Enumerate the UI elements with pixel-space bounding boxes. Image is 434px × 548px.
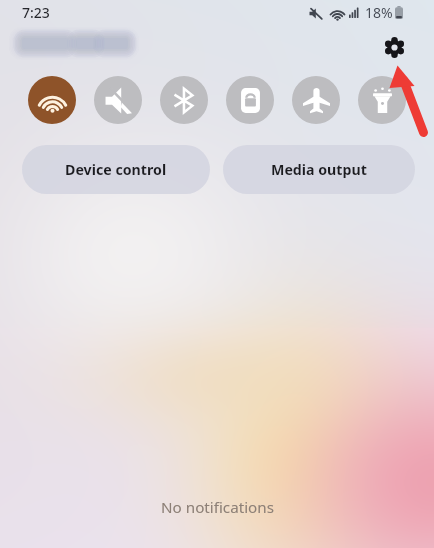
staticText: Device control (65, 160, 167, 179)
staticText: 7:23 (22, 3, 50, 22)
button[interactable]: Settings (378, 31, 410, 63)
button[interactable]: Bluetooth (160, 76, 208, 124)
button[interactable]: Sound off (94, 76, 142, 124)
staticText: 18% (365, 3, 393, 22)
button[interactable]: Device control (22, 145, 210, 194)
button[interactable]: Flashlight (358, 76, 406, 124)
button[interactable]: Media output (223, 145, 415, 194)
button[interactable]: Airplane mode (292, 76, 340, 124)
staticText: No notifications (161, 497, 274, 518)
staticText: Media output (271, 160, 367, 179)
button[interactable]: Wi-Fi (28, 76, 76, 124)
button[interactable]: Auto rotate (226, 76, 274, 124)
